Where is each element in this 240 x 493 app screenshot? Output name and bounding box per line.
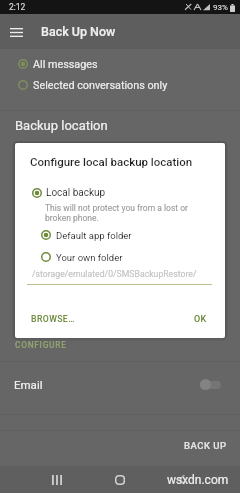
staticText: Back Up Now bbox=[41, 24, 116, 39]
button[interactable]: BROWSE… bbox=[19, 309, 87, 329]
staticText: 93% bbox=[213, 3, 228, 12]
staticText: BROWSE… bbox=[31, 314, 75, 324]
button[interactable]: BACK UP bbox=[171, 437, 240, 454]
button[interactable]: Home bbox=[105, 466, 134, 493]
button[interactable]: Email bbox=[0, 374, 240, 394]
staticText: BACK UP bbox=[184, 440, 227, 451]
button[interactable]: Your own folder bbox=[36, 247, 123, 267]
staticText: wsxdn.com bbox=[167, 473, 229, 487]
button[interactable]: Recents bbox=[42, 466, 71, 493]
staticText: /storage/emulated/0/SMSBackupRestore/ bbox=[32, 269, 197, 279]
button[interactable]: Open navigation menu bbox=[0, 16, 32, 48]
staticText: Default app folder bbox=[56, 230, 132, 241]
button[interactable]: Local backup bbox=[27, 183, 106, 203]
staticText: Configure local backup location bbox=[30, 155, 193, 168]
button[interactable]: Default app folder bbox=[36, 225, 132, 245]
staticText: OK bbox=[194, 314, 207, 325]
staticText: All messages bbox=[33, 58, 98, 71]
staticText: Selected conversations only bbox=[33, 79, 168, 92]
button[interactable]: Back bbox=[167, 466, 196, 493]
staticText: Local backup bbox=[46, 187, 106, 199]
staticText: 2:12 bbox=[9, 2, 26, 12]
staticText: Your own folder bbox=[56, 252, 123, 263]
button[interactable]: Selected conversations only bbox=[0, 75, 240, 95]
staticText: Backup location bbox=[15, 118, 108, 133]
button[interactable]: OK bbox=[182, 309, 219, 330]
button[interactable]: All messages bbox=[0, 54, 240, 74]
staticText: Email bbox=[14, 378, 43, 391]
staticText: CONFIGURE bbox=[15, 340, 67, 350]
staticText: This will not protect you from a lost or… bbox=[45, 203, 188, 223]
